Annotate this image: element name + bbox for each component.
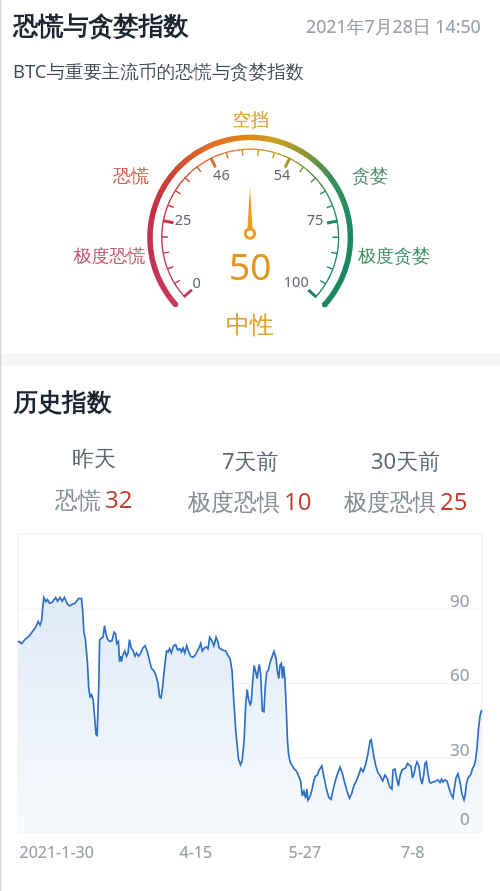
staticText: 7天前: [222, 445, 279, 475]
staticText: 极度恐惧: [188, 488, 280, 517]
staticText: 极度恐惧: [344, 488, 436, 517]
staticText: 10: [284, 484, 312, 517]
button[interactable]: 昨天: [16, 445, 172, 515]
staticText: 32: [105, 482, 133, 515]
staticText: 2021年7月28日 14:50: [306, 14, 481, 38]
button[interactable]: 7天前: [172, 445, 328, 517]
staticText: 历史指数: [13, 387, 111, 418]
staticText: 30天前: [371, 445, 441, 475]
staticText: 恐慌: [55, 486, 101, 515]
staticText: 恐慌与贪婪指数: [13, 11, 188, 42]
button[interactable]: 30天前: [328, 445, 484, 517]
staticText: 昨天: [72, 445, 116, 473]
staticText: 25: [440, 484, 468, 517]
staticText: BTC与重要主流币的恐慌与贪婪指数: [13, 58, 304, 83]
